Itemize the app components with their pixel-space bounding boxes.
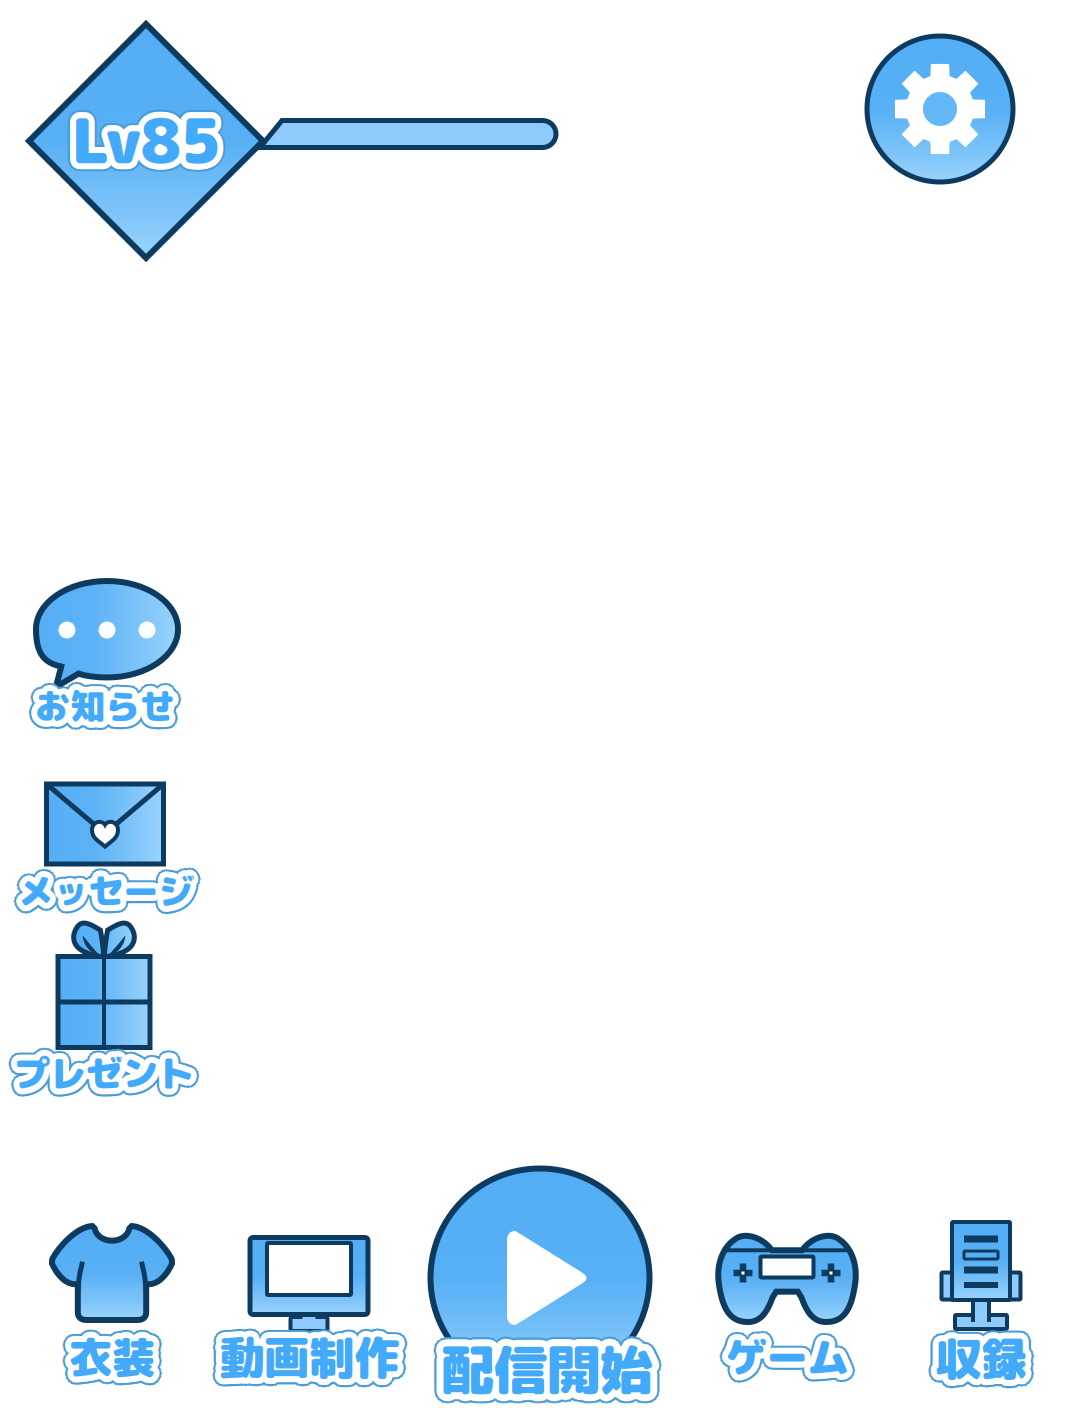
staticText: メッセージ xyxy=(22,874,197,923)
staticText: お知らせ xyxy=(35,688,175,736)
staticText: お知らせ xyxy=(33,676,173,725)
staticText: メッセージ xyxy=(27,867,202,915)
staticText: メッセージ xyxy=(13,864,188,913)
staticText: Lv85 xyxy=(74,92,223,177)
staticText: プレゼント xyxy=(8,1046,188,1096)
staticText: プレゼント xyxy=(17,1055,197,1106)
staticText: ゲーム xyxy=(725,1328,848,1386)
staticText: メッセージ xyxy=(23,871,198,919)
button[interactable]: 配信開始 xyxy=(415,1162,665,1425)
staticText: メッセージ xyxy=(22,859,197,908)
staticText: 動画制作 xyxy=(211,1322,391,1385)
staticText: お知らせ xyxy=(38,689,178,738)
staticText: Lv85 xyxy=(66,91,215,177)
staticText: 配信開始 xyxy=(447,1329,659,1403)
staticText: 収録 xyxy=(942,1326,1032,1390)
staticText: 衣装 xyxy=(67,1322,153,1381)
staticText: メッセージ xyxy=(21,872,196,921)
staticText: 収録 xyxy=(936,1335,1026,1398)
staticText: 動画制作 xyxy=(215,1330,395,1393)
staticText: メッセージ xyxy=(18,867,193,915)
staticText: 収録 xyxy=(930,1332,1020,1395)
staticText: メッセージ xyxy=(26,864,201,912)
staticText: Lv85 xyxy=(74,103,223,188)
staticText: プレゼント xyxy=(10,1044,190,1094)
staticText: 収録 xyxy=(932,1322,1022,1385)
staticText: 衣装 xyxy=(77,1324,163,1384)
staticText: ゲーム xyxy=(723,1323,846,1380)
staticText: ゲーム xyxy=(729,1336,852,1393)
staticText: メッセージ xyxy=(24,869,199,917)
staticText: ゲーム xyxy=(730,1324,853,1382)
staticText: Lv85 xyxy=(64,94,213,180)
button[interactable]: 収録 xyxy=(901,1218,1061,1398)
staticText: 衣装 xyxy=(69,1321,155,1381)
staticText: 収録 xyxy=(928,1329,1018,1393)
staticText: 動画制作 xyxy=(217,1331,397,1394)
staticText: 動画制作 xyxy=(219,1317,399,1380)
staticText: 配信開始 xyxy=(436,1327,648,1401)
staticText: 衣装 xyxy=(67,1333,153,1392)
staticText: お知らせ xyxy=(32,689,172,738)
button[interactable]: プレゼント xyxy=(4,943,204,1133)
staticText: 動画制作 xyxy=(222,1333,402,1396)
button[interactable]: メッセージ xyxy=(5,782,205,932)
staticText: ゲーム xyxy=(720,1322,843,1380)
staticText: プレゼント xyxy=(14,1056,194,1106)
staticText: 衣装 xyxy=(63,1325,149,1384)
staticText: お知らせ xyxy=(27,682,167,730)
staticText: プレゼント xyxy=(11,1040,191,1090)
staticText: 動画制作 xyxy=(225,1325,405,1389)
staticText: 衣装 xyxy=(69,1327,155,1387)
staticText: 衣装 xyxy=(74,1329,160,1389)
staticText: お知らせ xyxy=(29,676,169,724)
staticText: 衣装 xyxy=(74,1325,160,1384)
staticText: 動画制作 xyxy=(225,1320,405,1383)
staticText: 収録 xyxy=(930,1321,1020,1384)
staticText: 動画制作 xyxy=(219,1331,399,1395)
staticText: お知らせ xyxy=(39,678,179,726)
staticText: 収録 xyxy=(928,1326,1018,1390)
staticText: 配信開始 xyxy=(446,1337,658,1411)
staticText: お知らせ xyxy=(35,676,175,724)
button[interactable]: 衣装 xyxy=(27,1224,197,1394)
staticText: 動画制作 xyxy=(213,1328,393,1391)
staticText: プレゼント xyxy=(16,1042,196,1092)
button[interactable]: Settings xyxy=(867,36,1013,182)
staticText: 収録 xyxy=(944,1326,1034,1390)
staticText: 衣装 xyxy=(63,1333,149,1392)
staticText: 衣装 xyxy=(69,1333,155,1393)
staticText: お知らせ xyxy=(35,690,175,738)
staticText: お知らせ xyxy=(35,674,175,722)
staticText: お知らせ xyxy=(29,679,169,728)
staticText: Lv85 xyxy=(79,100,228,186)
button[interactable]: ゲーム xyxy=(697,1231,877,1391)
staticText: 動画制作 xyxy=(223,1330,403,1393)
staticText: プレゼント xyxy=(8,1048,188,1098)
button[interactable]: お知らせ xyxy=(12,585,202,755)
staticText: メッセージ xyxy=(24,864,199,913)
staticText: メッセージ xyxy=(21,861,196,910)
staticText: 衣装 xyxy=(71,1322,157,1381)
staticText: お知らせ xyxy=(33,687,173,736)
staticText: 配信開始 xyxy=(444,1323,656,1398)
staticText: 動画制作 xyxy=(221,1331,401,1394)
staticText: 収録 xyxy=(940,1331,1030,1394)
staticText: 配信開始 xyxy=(450,1332,662,1406)
staticText: お知らせ xyxy=(37,687,177,736)
staticText: メッセージ xyxy=(13,869,188,917)
staticText: 収録 xyxy=(932,1331,1022,1394)
staticText: 配信開始 xyxy=(437,1323,649,1398)
staticText: Lv85 xyxy=(67,93,216,179)
staticText: メッセージ xyxy=(23,863,198,911)
staticText: プレゼント xyxy=(18,1052,198,1102)
staticText: ゲーム xyxy=(728,1334,851,1391)
staticText: メッセージ xyxy=(18,859,193,907)
button[interactable]: Level 85 xyxy=(24,19,268,263)
button[interactable]: 動画制作 xyxy=(204,1224,414,1394)
staticText: プレゼント xyxy=(8,1050,188,1100)
staticText: ゲーム xyxy=(731,1322,854,1380)
staticText: ゲーム xyxy=(717,1328,840,1386)
staticText: ゲーム xyxy=(731,1330,854,1388)
staticText: 収録 xyxy=(933,1334,1023,1397)
